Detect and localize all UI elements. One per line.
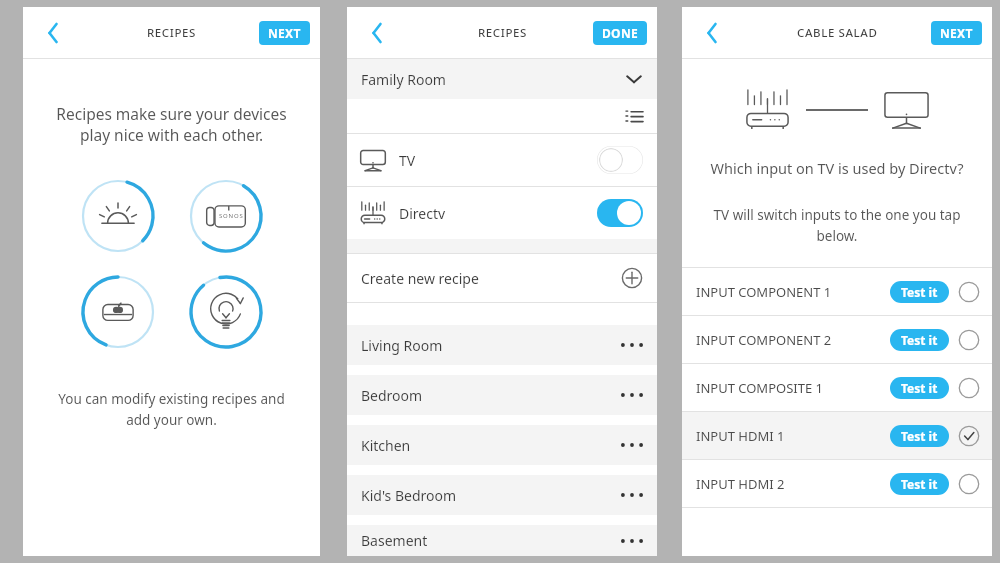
button[interactable]: INPUT COMPOSITE 1 — [682, 364, 992, 411]
other: Reorder list — [626, 108, 643, 125]
staticText: Kid's Bedroom — [361, 486, 457, 505]
staticText: TV will switch inputs to the one you tap… — [712, 206, 962, 245]
button[interactable]: DONE — [593, 21, 647, 45]
button[interactable]: Select INPUT HDMI 2 — [958, 473, 980, 495]
button[interactable]: Recipe — [80, 178, 156, 254]
staticText: INPUT HDMI 1 — [696, 427, 785, 445]
button[interactable]: Toggle TV — [597, 146, 643, 174]
button[interactable]: Recipe — [188, 178, 264, 254]
button[interactable]: Test it — [890, 377, 949, 399]
staticText: TV — [399, 151, 416, 170]
button[interactable]: INPUT COMPONENT 1 — [682, 268, 992, 315]
staticText: RECIPES — [147, 25, 196, 41]
other: More options — [621, 491, 643, 499]
staticText: SONOS — [219, 212, 244, 220]
staticText: Test it — [901, 332, 938, 348]
staticText: Kitchen — [361, 436, 411, 455]
button[interactable]: Kid's Bedroom — [347, 475, 657, 515]
staticText: Test it — [901, 284, 938, 300]
staticText: Directv — [399, 204, 446, 223]
staticText: NEXT — [940, 25, 973, 41]
button[interactable]: Recipe — [188, 274, 264, 350]
button[interactable]: Back — [694, 15, 730, 51]
button[interactable]: Basement — [347, 525, 657, 556]
button[interactable]: TV — [347, 134, 657, 186]
button[interactable]: Back — [359, 15, 395, 51]
button[interactable]: INPUT HDMI 1 — [682, 412, 992, 459]
button[interactable]: Create new recipe — [347, 254, 657, 302]
staticText: Test it — [901, 476, 938, 492]
button[interactable]: Test it — [890, 281, 949, 303]
staticText: Test it — [901, 380, 938, 396]
other: More options — [621, 341, 643, 349]
button[interactable]: Test it — [890, 425, 949, 447]
other: More options — [621, 391, 643, 399]
staticText: INPUT COMPOSITE 1 — [696, 379, 823, 397]
staticText: You can modify existing recipes and add … — [51, 390, 292, 429]
button[interactable]: NEXT — [931, 21, 982, 45]
staticText: RECIPES — [478, 25, 527, 41]
button[interactable]: Select INPUT HDMI 1 — [958, 425, 980, 447]
staticText: INPUT HDMI 2 — [696, 475, 785, 493]
button[interactable]: Bedroom — [347, 375, 657, 415]
button[interactable]: Directv — [347, 187, 657, 239]
staticText: Recipes make sure your devices play nice… — [45, 103, 298, 146]
button[interactable]: INPUT HDMI 2 — [682, 460, 992, 507]
button[interactable]: Test it — [890, 329, 949, 351]
button[interactable]: Recipe — [80, 274, 156, 350]
staticText: Create new recipe — [361, 269, 479, 288]
button[interactable]: Select INPUT COMPONENT 1 — [958, 281, 980, 303]
staticText: INPUT COMPONENT 2 — [696, 331, 832, 349]
staticText: CABLE SALAD — [797, 25, 878, 41]
other: More options — [621, 441, 643, 449]
button[interactable]: NEXT — [259, 21, 310, 45]
button[interactable]: Reorder list — [347, 99, 657, 133]
staticText: INPUT COMPONENT 1 — [696, 283, 832, 301]
staticText: DONE — [602, 25, 638, 41]
staticText: Family Room — [361, 70, 446, 89]
button[interactable]: Kitchen — [347, 425, 657, 465]
button[interactable]: INPUT COMPONENT 2 — [682, 316, 992, 363]
button[interactable]: Living Room — [347, 325, 657, 365]
button[interactable]: Toggle Directv — [597, 199, 643, 227]
button[interactable]: Back — [35, 15, 71, 51]
staticText: NEXT — [268, 25, 301, 41]
button[interactable]: Select INPUT COMPOSITE 1 — [958, 377, 980, 399]
staticText: Which input on TV is used by Directv? — [694, 158, 980, 178]
button[interactable]: Select INPUT COMPONENT 2 — [958, 329, 980, 351]
staticText: Bedroom — [361, 386, 423, 405]
other: More options — [621, 537, 643, 545]
staticText: Living Room — [361, 336, 443, 355]
button[interactable]: Test it — [890, 473, 949, 495]
staticText: Basement — [361, 531, 428, 550]
staticText: Test it — [901, 428, 938, 444]
button[interactable]: Family Room — [347, 59, 657, 99]
